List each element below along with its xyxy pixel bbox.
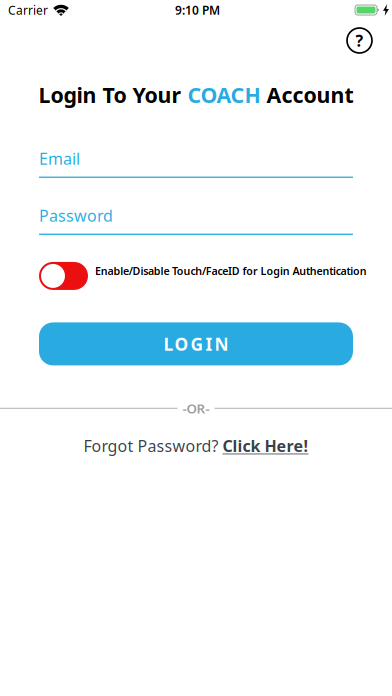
staticText: Password: [39, 205, 113, 226]
button[interactable]: LOGIN: [39, 322, 353, 365]
button[interactable]: Forgot Password?: [83, 435, 308, 456]
staticText: Enable/Disable Touch/FaceID for Login Au…: [95, 264, 367, 278]
staticText: Login To Your: [38, 80, 187, 109]
staticText: Click Here!: [222, 435, 308, 456]
staticText: Forgot Password?: [83, 435, 222, 456]
staticText: Carrier: [8, 2, 48, 18]
staticText: LOGIN: [163, 332, 228, 355]
button[interactable]: Enable/Disable Touch/FaceID for Login Au…: [39, 262, 88, 290]
button[interactable]: Help: [347, 28, 372, 53]
staticText: -OR-: [182, 399, 209, 417]
staticText: Account: [260, 80, 353, 109]
staticText: Email: [39, 148, 80, 169]
staticText: 9:10 PM: [175, 2, 220, 18]
staticText: ?: [355, 30, 363, 51]
staticText: COACH: [187, 80, 260, 109]
